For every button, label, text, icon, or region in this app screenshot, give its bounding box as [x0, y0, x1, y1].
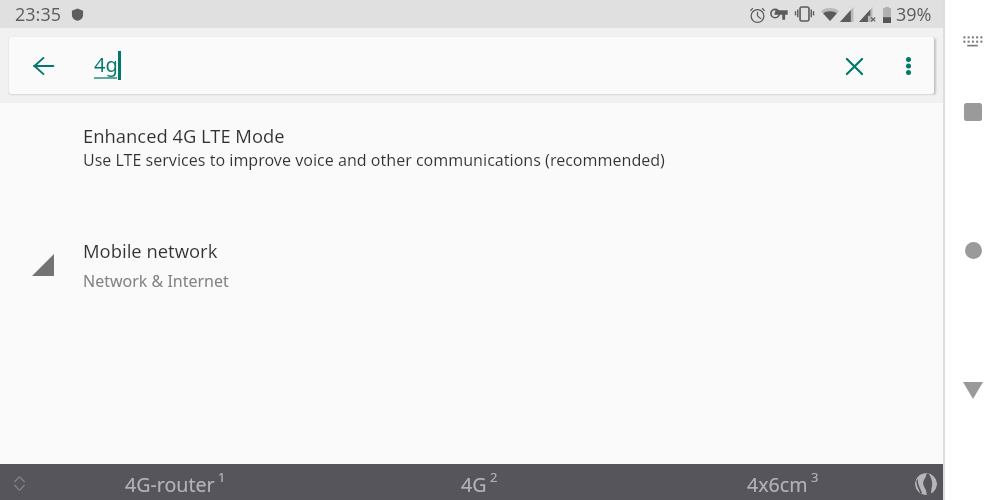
staticText: 39%	[896, 2, 932, 27]
button[interactable]: Back	[963, 382, 983, 399]
staticText: 3	[811, 468, 819, 486]
staticText: 2	[490, 468, 498, 486]
staticText: Network & Internet	[83, 270, 229, 292]
staticText: 23:35	[15, 2, 62, 27]
button[interactable]: Change keyboard language	[915, 473, 937, 495]
button[interactable]: 4G	[327, 464, 631, 500]
staticText: 4g	[94, 51, 118, 78]
button[interactable]: 4x6cm	[631, 464, 935, 500]
staticText: 1	[218, 468, 226, 486]
staticText: 4x6cm	[747, 471, 808, 498]
button[interactable]: Recent apps	[964, 103, 982, 121]
button[interactable]: Clear search	[834, 46, 874, 86]
button[interactable]: Hide keyboard	[963, 36, 982, 47]
staticText: Enhanced 4G LTE Mode	[83, 123, 285, 148]
staticText: Mobile network	[83, 238, 218, 263]
staticText: 4G	[461, 471, 487, 498]
staticText: Use LTE services to improve voice and ot…	[83, 149, 665, 171]
button[interactable]: Enhanced 4G LTE Mode	[0, 106, 943, 219]
button[interactable]: 4G-router	[23, 464, 327, 500]
button[interactable]: Home	[965, 242, 982, 259]
button[interactable]: More options	[888, 46, 928, 86]
button[interactable]: Expand suggestions	[14, 476, 25, 491]
button[interactable]: Mobile network	[0, 219, 943, 332]
button[interactable]: Navigate up	[23, 46, 63, 86]
staticText: 4G-router	[125, 471, 215, 498]
